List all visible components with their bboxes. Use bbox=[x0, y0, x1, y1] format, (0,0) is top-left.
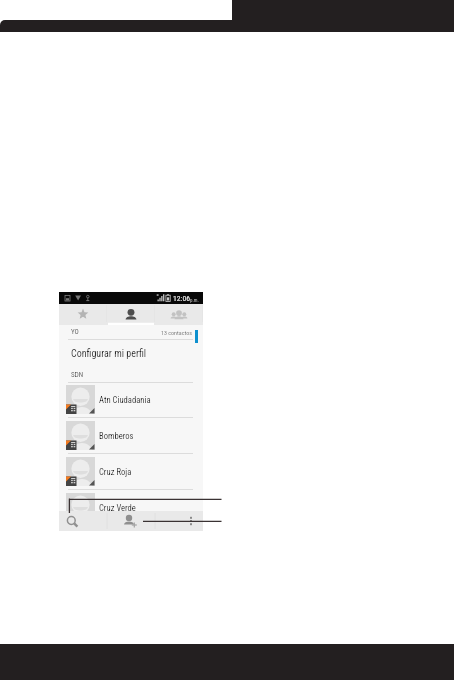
staticText: Cruz Roja bbox=[99, 467, 132, 477]
button[interactable]: Configurar mi perfil bbox=[59, 340, 203, 368]
button[interactable]: More options bbox=[184, 511, 198, 531]
button[interactable]: Contacts tab bbox=[107, 304, 155, 325]
button[interactable]: Groups tab bbox=[155, 304, 203, 325]
staticText: 12:06 bbox=[173, 294, 190, 303]
button[interactable]: Favorites tab bbox=[59, 304, 107, 325]
staticText: 13 contactos bbox=[161, 329, 192, 336]
button[interactable]: Cruz Verde bbox=[59, 490, 203, 525]
button[interactable]: Add contact bbox=[121, 511, 141, 531]
staticText: Bomberos bbox=[99, 431, 134, 441]
staticText: SDN bbox=[71, 371, 83, 379]
staticText: Configurar mi perfil bbox=[71, 348, 147, 360]
button[interactable]: Atn Ciudadania bbox=[59, 382, 203, 417]
button[interactable]: Bomberos bbox=[59, 418, 203, 453]
button[interactable]: Search bbox=[64, 511, 80, 531]
staticText: Cruz Verde bbox=[99, 503, 136, 513]
staticText: Atn Ciudadania bbox=[99, 395, 151, 405]
staticText: p.m. bbox=[190, 297, 199, 303]
button[interactable]: Cruz Roja bbox=[59, 454, 203, 489]
staticText: YO bbox=[71, 328, 79, 336]
